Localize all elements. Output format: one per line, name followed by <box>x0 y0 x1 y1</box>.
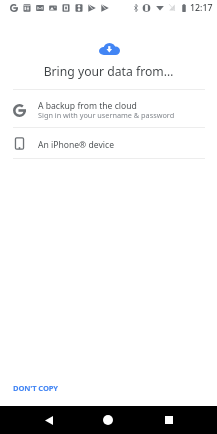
staticText: Sign in with your username & password <box>38 110 175 120</box>
staticText: A backup from the cloud <box>38 100 137 112</box>
button[interactable]: Back <box>35 406 63 434</box>
button[interactable]: An iPhone® device <box>0 128 217 158</box>
button[interactable]: DON'T COPY <box>0 378 71 398</box>
button[interactable]: A backup from the cloud <box>0 90 217 127</box>
staticText: 12:17 <box>190 2 213 14</box>
staticText: DON'T COPY <box>13 383 58 393</box>
button[interactable]: Home <box>94 406 122 434</box>
button[interactable]: Recent apps <box>155 406 183 434</box>
staticText: An iPhone® device <box>38 139 115 151</box>
staticText: Bring your data from… <box>0 63 217 80</box>
